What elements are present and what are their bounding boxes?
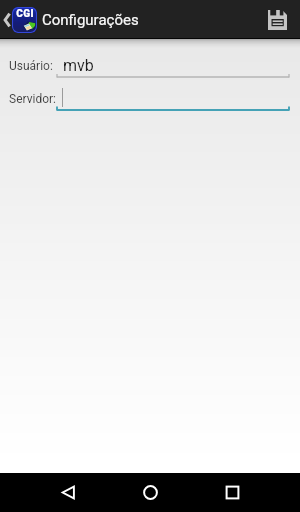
- button[interactable]: Back: [38, 473, 98, 512]
- staticText: Servidor:: [9, 92, 56, 106]
- button[interactable]: Recents: [202, 473, 262, 512]
- button[interactable]: Navigate up: [0, 0, 37, 39]
- staticText: mvb: [63, 56, 94, 75]
- button[interactable]: Home: [120, 473, 180, 512]
- staticText: CGI: [16, 8, 34, 20]
- button[interactable]: Save: [255, 0, 300, 39]
- button[interactable]: mvb: [56, 54, 289, 77]
- button[interactable]: [56, 87, 289, 110]
- staticText: Usuário:: [9, 59, 53, 73]
- staticText: Configurações: [42, 11, 139, 29]
